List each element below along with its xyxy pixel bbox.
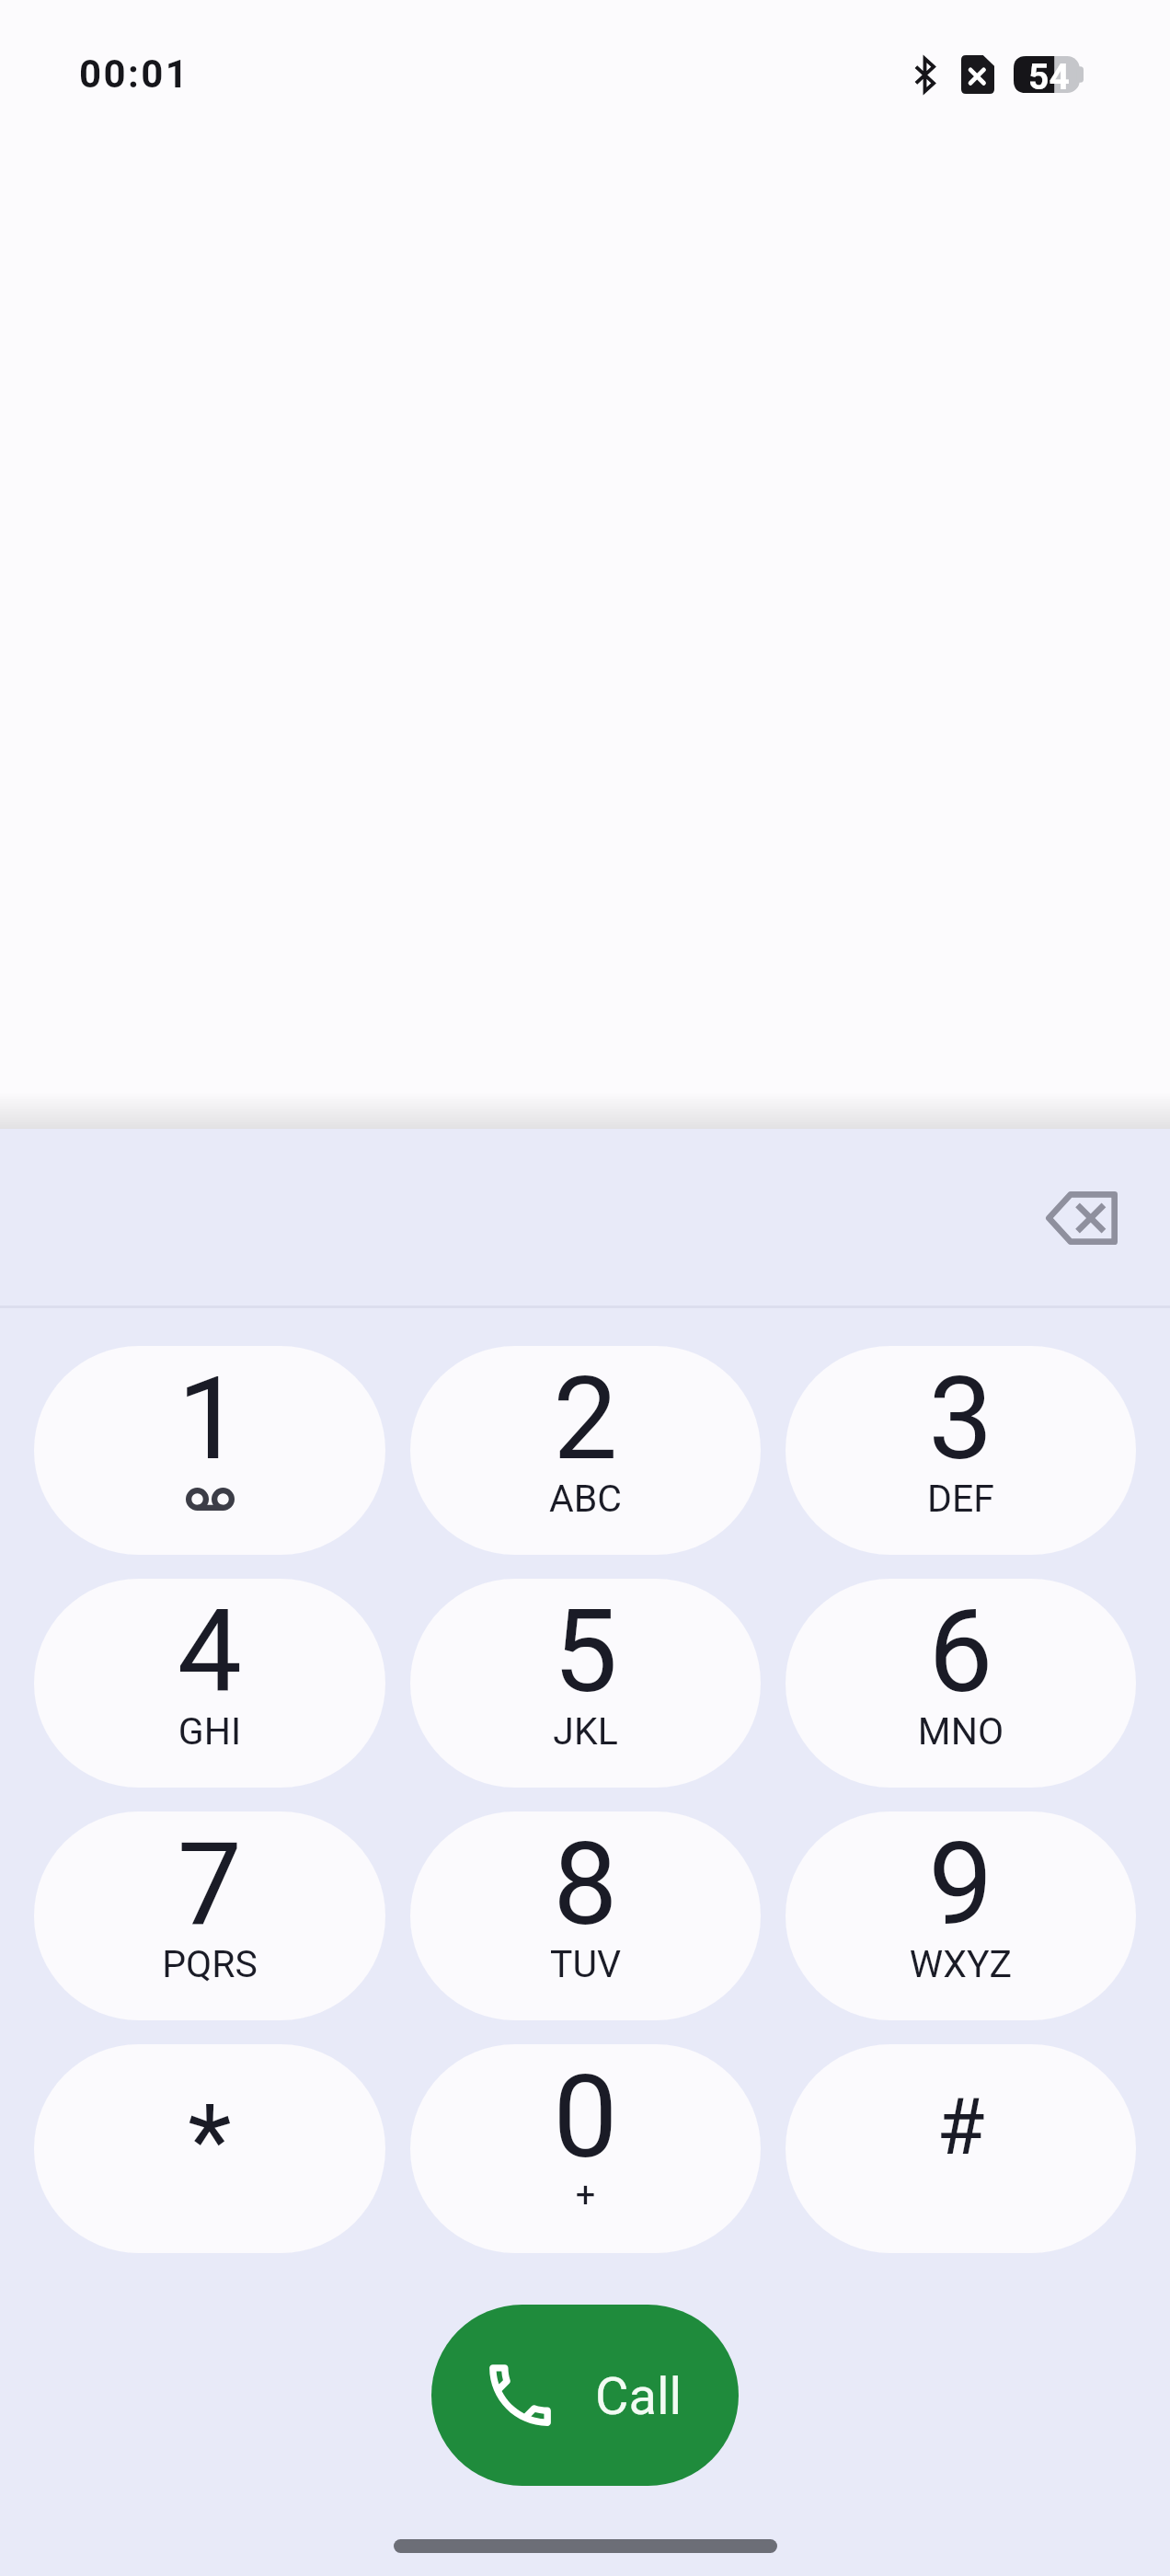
- staticText: 7: [34, 1817, 385, 1951]
- staticText: 6: [786, 1584, 1136, 1719]
- staticText: PQRS: [34, 1942, 385, 1986]
- button[interactable]: Call: [431, 2305, 739, 2486]
- staticText: 54: [1028, 56, 1070, 93]
- button[interactable]: Backspace: [1027, 1163, 1137, 1273]
- staticText: GHI: [34, 1709, 385, 1754]
- button[interactable]: 5 JKL: [410, 1579, 761, 1788]
- staticText: 8: [410, 1817, 761, 1951]
- staticText: Call: [595, 2366, 682, 2427]
- staticText: DEF: [786, 1477, 1136, 1521]
- button[interactable]: 1 voicemail: [34, 1346, 385, 1555]
- button[interactable]: 2 ABC: [410, 1346, 761, 1555]
- staticText: +: [410, 2175, 761, 2216]
- button[interactable]: 4 GHI: [34, 1579, 385, 1788]
- staticText: 4: [34, 1584, 385, 1719]
- staticText: ABC: [410, 1477, 761, 1521]
- staticText: 5: [410, 1584, 761, 1719]
- staticText: 1: [34, 1351, 385, 1486]
- staticText: TUV: [410, 1942, 761, 1986]
- staticText: 9: [786, 1817, 1136, 1951]
- staticText: JKL: [410, 1709, 761, 1754]
- staticText: 2: [410, 1351, 761, 1486]
- button[interactable]: Star: [34, 2044, 385, 2253]
- staticText: #: [786, 2081, 1136, 2173]
- staticText: WXYZ: [786, 1942, 1136, 1986]
- button[interactable]: 8 TUV: [410, 1811, 761, 2020]
- button[interactable]: Pound: [786, 2044, 1136, 2253]
- staticText: MNO: [786, 1709, 1136, 1754]
- staticText: *: [34, 2082, 385, 2201]
- staticText: 00:01: [79, 52, 190, 97]
- button[interactable]: 7 PQRS: [34, 1811, 385, 2020]
- staticText: 3: [786, 1351, 1136, 1486]
- button[interactable]: 9 WXYZ: [786, 1811, 1136, 2020]
- button[interactable]: 0 plus: [410, 2044, 761, 2253]
- button[interactable]: 3 DEF: [786, 1346, 1136, 1555]
- staticText: 0: [410, 2050, 761, 2184]
- button[interactable]: 6 MNO: [786, 1579, 1136, 1788]
